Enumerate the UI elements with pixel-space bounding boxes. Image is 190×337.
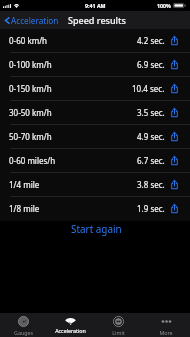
button[interactable]: 0-60 miles/h xyxy=(0,149,190,173)
button[interactable]: Back to Acceleration xyxy=(0,15,63,26)
button[interactable]: 0-60 km/h xyxy=(0,29,190,53)
staticText: 0-100 km/h xyxy=(9,59,52,70)
button[interactable]: 0-100 km/h xyxy=(0,53,190,77)
button[interactable]: Share xyxy=(170,180,179,189)
button[interactable]: 30-50 km/h xyxy=(0,101,190,125)
button[interactable]: Share xyxy=(170,36,179,45)
staticText: 6.9 sec. xyxy=(137,59,165,70)
staticText: 10.4 sec. xyxy=(132,83,165,94)
button[interactable]: Share xyxy=(170,204,179,213)
staticText: 30-50 km/h xyxy=(9,107,52,118)
staticText: Limit xyxy=(112,329,125,336)
button[interactable]: Share xyxy=(170,108,179,117)
staticText: 0-150 km/h xyxy=(9,83,52,94)
button[interactable]: More xyxy=(142,313,190,337)
staticText: 1/4 mile xyxy=(9,179,40,190)
button[interactable]: Share xyxy=(170,84,179,93)
staticText: 6.7 sec. xyxy=(137,155,165,166)
staticText: Acceleration xyxy=(11,15,59,26)
staticText: 50-70 km/h xyxy=(9,131,52,142)
button[interactable]: Share xyxy=(170,156,179,165)
button[interactable]: 1/4 mile xyxy=(0,173,190,197)
button[interactable]: 50-70 km/h xyxy=(0,125,190,149)
button[interactable]: Acceleration xyxy=(47,313,94,337)
button[interactable]: Start again xyxy=(0,221,190,235)
button[interactable]: Share xyxy=(170,132,179,141)
staticText: 0-60 miles/h xyxy=(9,155,56,166)
staticText: More xyxy=(159,329,173,336)
staticText: Start again xyxy=(71,222,122,235)
staticText: 100% xyxy=(157,2,171,9)
staticText: 1/8 mile xyxy=(9,203,40,214)
staticText: Acceleration xyxy=(55,327,86,334)
staticText: 9:41 AM xyxy=(85,2,106,9)
button[interactable]: 0-150 km/h xyxy=(0,77,190,101)
button[interactable]: Gauges xyxy=(0,313,47,337)
staticText: 3.8 sec. xyxy=(137,179,165,190)
button[interactable]: Share xyxy=(170,60,179,69)
staticText: 4.9 sec. xyxy=(137,131,165,142)
button[interactable]: Limit xyxy=(94,313,142,337)
staticText: Speed results xyxy=(68,14,126,26)
staticText: 1.9 sec. xyxy=(137,203,165,214)
staticText: 3.5 sec. xyxy=(137,107,165,118)
button[interactable]: 1/8 mile xyxy=(0,197,190,221)
staticText: 4.2 sec. xyxy=(137,35,165,46)
staticText: 0-60 km/h xyxy=(9,35,48,46)
staticText: Gauges xyxy=(14,329,33,336)
